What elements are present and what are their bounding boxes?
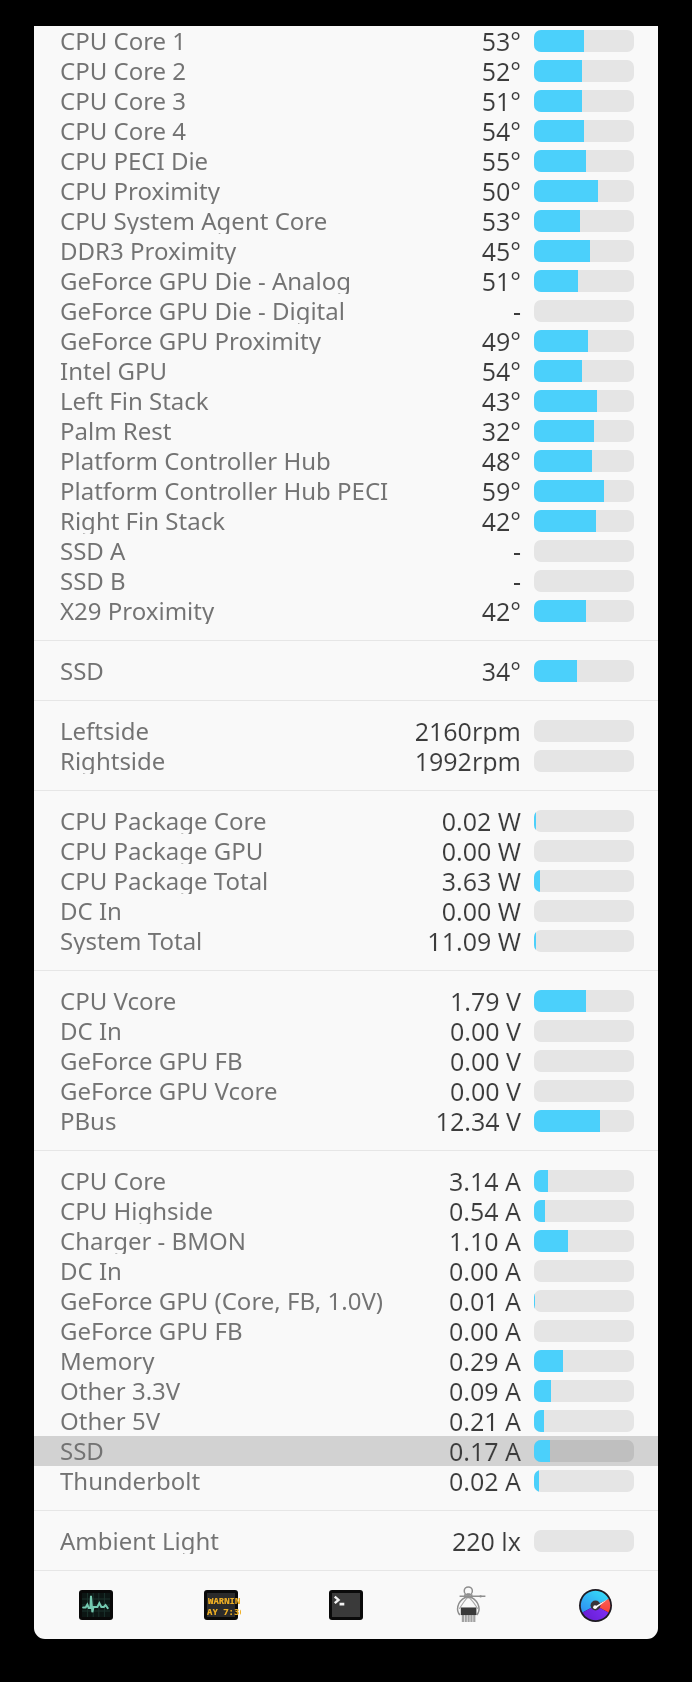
staticText: 51°	[481, 84, 521, 114]
staticText: 51°	[481, 264, 521, 294]
staticText: 1.10 A	[448, 1224, 521, 1254]
button[interactable]: DC In	[34, 1016, 658, 1046]
staticText: CPU Core	[60, 1164, 167, 1194]
staticText: 0.17 A	[448, 1434, 521, 1464]
button[interactable]: CPU Proximity	[34, 176, 658, 206]
staticText: 0.00 V	[449, 1044, 521, 1074]
button[interactable]: Other 5V	[34, 1406, 658, 1436]
button[interactable]: CPU Core 3	[34, 86, 658, 116]
staticText: AY 7:36	[207, 1605, 241, 1617]
staticText: 54°	[481, 354, 521, 384]
button[interactable]: Memory	[34, 1346, 658, 1376]
staticText: GeForce GPU Vcore	[60, 1074, 278, 1104]
button[interactable]: GeForce GPU Vcore	[34, 1076, 658, 1106]
staticText: 0.00 W	[441, 834, 521, 864]
button[interactable]: DC In	[34, 1256, 658, 1286]
button[interactable]: Leftside	[34, 716, 658, 746]
button[interactable]: System Total	[34, 926, 658, 956]
button[interactable]: GeForce GPU FB	[34, 1046, 658, 1076]
staticText: CPU Vcore	[60, 984, 177, 1014]
staticText: Rightside	[60, 744, 166, 774]
button[interactable]: SSD	[34, 656, 658, 686]
button[interactable]: Intel GPU	[34, 356, 658, 386]
staticText: Platform Controller Hub PECI	[60, 474, 389, 504]
button[interactable]: Charger - BMON	[34, 1226, 658, 1256]
button[interactable]: GeForce GPU (Core, FB, 1.0V)	[34, 1286, 658, 1316]
staticText: CPU System Agent Core	[60, 204, 328, 234]
button[interactable]: Palm Rest	[34, 416, 658, 446]
staticText: Memory	[60, 1344, 155, 1374]
button[interactable]: CPU Package Total	[34, 866, 658, 896]
staticText: 0.00 A	[448, 1314, 521, 1344]
staticText: Right Fin Stack	[60, 504, 225, 534]
staticText: 0.00 W	[441, 894, 521, 924]
staticText: 53°	[481, 26, 521, 54]
button[interactable]: GeForce GPU Die - Digital	[34, 296, 658, 326]
staticText: System Total	[60, 924, 203, 954]
button[interactable]: SSD A	[34, 536, 658, 566]
button[interactable]: Rightside	[34, 746, 658, 776]
button[interactable]: PBus	[34, 1106, 658, 1136]
button[interactable]: CPU Highside	[34, 1196, 658, 1226]
staticText: Left Fin Stack	[60, 384, 209, 414]
button[interactable]: CPU Package GPU	[34, 836, 658, 866]
button[interactable]: CPU System Agent Core	[34, 206, 658, 236]
button[interactable]: CPU Core 1	[34, 26, 658, 56]
staticText: 52°	[481, 54, 521, 84]
button[interactable]: CPU Core	[34, 1166, 658, 1196]
button[interactable]: DDR3 Proximity	[34, 236, 658, 266]
staticText: DC In	[60, 894, 122, 924]
staticText: 11.09 W	[427, 924, 521, 954]
staticText: DC In	[60, 1014, 122, 1044]
button[interactable]: Activity Monitor	[34, 1571, 158, 1639]
button[interactable]: Thunderbolt	[34, 1466, 658, 1496]
staticText: GeForce GPU Die - Analog	[60, 264, 352, 294]
staticText: PBus	[60, 1104, 117, 1134]
staticText: 45°	[481, 234, 521, 264]
button[interactable]: Other 3.3V	[34, 1376, 658, 1406]
staticText: 1.79 V	[449, 984, 521, 1014]
button[interactable]: DC In	[34, 896, 658, 926]
staticText: -	[512, 294, 521, 324]
button[interactable]: GeForce GPU Die - Analog	[34, 266, 658, 296]
staticText: 42°	[481, 504, 521, 534]
button[interactable]: Gauge	[533, 1571, 658, 1639]
button[interactable]: Platform Controller Hub PECI	[34, 476, 658, 506]
button[interactable]: Terminal	[283, 1571, 408, 1639]
button[interactable]: GeForce GPU Proximity	[34, 326, 658, 356]
staticText: SSD A	[60, 534, 126, 564]
staticText: 54°	[481, 114, 521, 144]
button[interactable]: Left Fin Stack	[34, 386, 658, 416]
staticText: 0.21 A	[448, 1404, 521, 1434]
button[interactable]: SSD	[34, 1436, 658, 1466]
staticText: Platform Controller Hub	[60, 444, 331, 474]
staticText: Thunderbolt	[60, 1464, 201, 1494]
staticText: 59°	[481, 474, 521, 504]
button[interactable]: Right Fin Stack	[34, 506, 658, 536]
button[interactable]: CPU Vcore	[34, 986, 658, 1016]
staticText: Other 5V	[60, 1404, 161, 1434]
staticText: Other 3.3V	[60, 1374, 181, 1404]
staticText: CPU Core 1	[60, 26, 187, 54]
button[interactable]: Platform Controller Hub	[34, 446, 658, 476]
staticText: -	[512, 564, 521, 594]
button[interactable]: Ambient Light	[34, 1526, 658, 1556]
button[interactable]: Instruments	[408, 1571, 533, 1639]
button[interactable]: CPU Core 2	[34, 56, 658, 86]
staticText: 12.34 V	[435, 1104, 521, 1134]
button[interactable]: CPU Package Core	[34, 806, 658, 836]
staticText: GeForce GPU Die - Digital	[60, 294, 345, 324]
staticText: Charger - BMON	[60, 1224, 246, 1254]
button[interactable]: Console	[158, 1571, 283, 1639]
button[interactable]: GeForce GPU FB	[34, 1316, 658, 1346]
staticText: 53°	[481, 204, 521, 234]
button[interactable]: CPU PECI Die	[34, 146, 658, 176]
button[interactable]: CPU Core 4	[34, 116, 658, 146]
staticText: CPU Package Core	[60, 804, 267, 834]
button[interactable]: SSD B	[34, 566, 658, 596]
staticText: 55°	[481, 144, 521, 174]
staticText: CPU Proximity	[60, 174, 220, 204]
staticText: 49°	[481, 324, 521, 354]
button[interactable]: X29 Proximity	[34, 596, 658, 626]
staticText: SSD B	[60, 564, 126, 594]
